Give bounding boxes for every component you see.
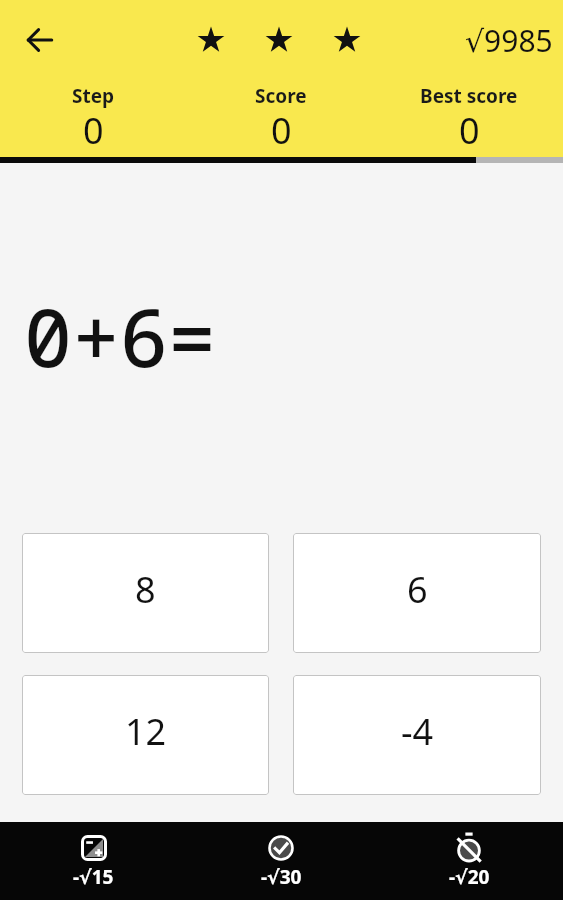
- staticText: 0: [271, 106, 292, 154]
- staticText: -√15: [73, 864, 114, 890]
- staticText: -4: [401, 707, 434, 756]
- staticText: 0: [459, 106, 480, 154]
- button[interactable]: 8: [22, 533, 269, 653]
- button[interactable]: -√30: [187, 822, 375, 900]
- staticText: 0: [83, 106, 104, 154]
- staticText: -√20: [449, 864, 490, 890]
- button[interactable]: -√20: [375, 822, 563, 900]
- button[interactable]: 12: [22, 675, 269, 795]
- staticText: 12: [125, 707, 167, 756]
- staticText: √9985: [465, 20, 553, 61]
- staticText: 6: [407, 565, 428, 614]
- staticText: 8: [135, 565, 156, 614]
- button[interactable]: 6: [293, 533, 541, 653]
- staticText: Step: [72, 83, 115, 109]
- staticText: Best score: [420, 83, 518, 109]
- staticText: 0+6=: [24, 281, 216, 390]
- button[interactable]: -4: [293, 675, 541, 795]
- button[interactable]: [24, 24, 56, 56]
- button[interactable]: -√15: [0, 822, 187, 900]
- staticText: Score: [255, 83, 307, 109]
- staticText: -√30: [261, 864, 302, 890]
